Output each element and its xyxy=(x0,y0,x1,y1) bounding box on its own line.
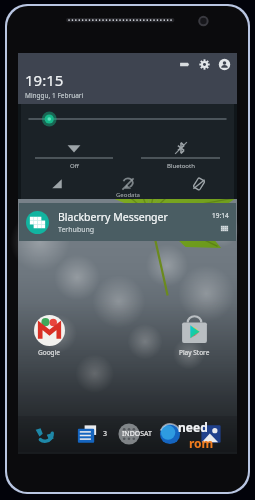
button[interactable]: Play Store xyxy=(168,315,221,357)
staticText: 19:15 xyxy=(25,70,64,90)
button[interactable]: Rotation xyxy=(163,177,234,191)
button[interactable]: Signal xyxy=(21,177,92,191)
staticText: Off xyxy=(70,162,79,170)
button[interactable]: Google xyxy=(26,315,72,357)
button[interactable]: Off xyxy=(21,141,127,170)
button[interactable]: Blackberry Messenger xyxy=(19,203,236,241)
staticText: Terhubung xyxy=(58,225,95,235)
staticText: 19:14 xyxy=(212,211,229,220)
staticText: INDOSAT xyxy=(122,429,152,439)
staticText: Play Store xyxy=(179,348,210,357)
button[interactable]: Phone xyxy=(24,416,66,452)
button[interactable]: Browser xyxy=(149,416,190,452)
staticText: Minggu, 1 Februari xyxy=(25,91,84,100)
staticText: Blackberry Messenger xyxy=(58,210,168,224)
staticText: rom xyxy=(189,435,214,449)
button[interactable]: Location xyxy=(92,177,163,199)
button[interactable]: Settings xyxy=(198,58,211,71)
staticText: 3 xyxy=(103,429,108,439)
button[interactable]: Gallery xyxy=(190,416,231,452)
button[interactable]: Bluetooth xyxy=(127,141,234,170)
button[interactable]: Apps xyxy=(108,416,149,452)
staticText: Geodata xyxy=(116,191,140,199)
staticText: Bluetooth xyxy=(167,162,195,170)
button[interactable]: Brightness xyxy=(21,112,234,126)
staticText: need xyxy=(178,419,208,435)
staticText: Google xyxy=(38,348,60,357)
button[interactable]: User xyxy=(218,58,231,71)
button[interactable]: Battery xyxy=(178,58,191,71)
button[interactable]: Messaging xyxy=(66,416,108,452)
